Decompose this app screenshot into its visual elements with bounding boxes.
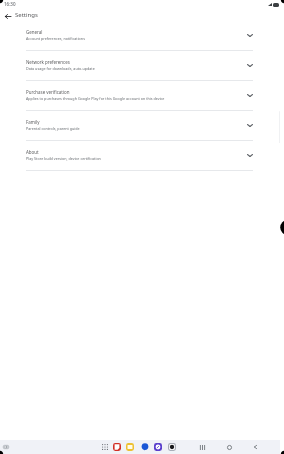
button[interactable]: About bbox=[0, 141, 284, 171]
button[interactable]: Home bbox=[224, 442, 234, 452]
button[interactable]: Back bbox=[1, 9, 15, 23]
staticText: Applies to purchases through Google Play… bbox=[26, 96, 165, 101]
staticText: Purchase verification bbox=[26, 89, 70, 95]
staticText: Account preferences, notifications bbox=[26, 36, 85, 41]
button[interactable]: Family bbox=[0, 111, 284, 141]
staticText: 16:30 bbox=[4, 1, 16, 7]
staticText: General bbox=[26, 29, 43, 35]
button[interactable]: Keep bbox=[126, 443, 134, 451]
button[interactable]: Docs bbox=[113, 443, 121, 451]
staticText: Parental controls, parent guide bbox=[26, 126, 80, 131]
button[interactable]: Browser bbox=[154, 443, 162, 451]
staticText: Family bbox=[26, 119, 40, 125]
button[interactable]: Keyboard bbox=[1, 442, 11, 452]
staticText: Play Store build version, device certifi… bbox=[26, 156, 101, 161]
staticText: Data usage for downloads, auto-update bbox=[26, 66, 95, 71]
button[interactable]: Recent apps bbox=[197, 442, 207, 452]
button[interactable]: Camera bbox=[168, 443, 176, 451]
button[interactable]: Messages bbox=[141, 443, 149, 451]
button[interactable]: Purchase verification bbox=[0, 81, 284, 111]
staticText: About bbox=[26, 149, 39, 155]
button[interactable]: All apps bbox=[102, 444, 108, 450]
button[interactable]: Back bbox=[250, 442, 260, 452]
staticText: Network preferences bbox=[26, 59, 70, 65]
button[interactable]: Network preferences bbox=[0, 51, 284, 81]
staticText: Settings bbox=[15, 11, 38, 19]
button[interactable]: General bbox=[0, 21, 284, 51]
